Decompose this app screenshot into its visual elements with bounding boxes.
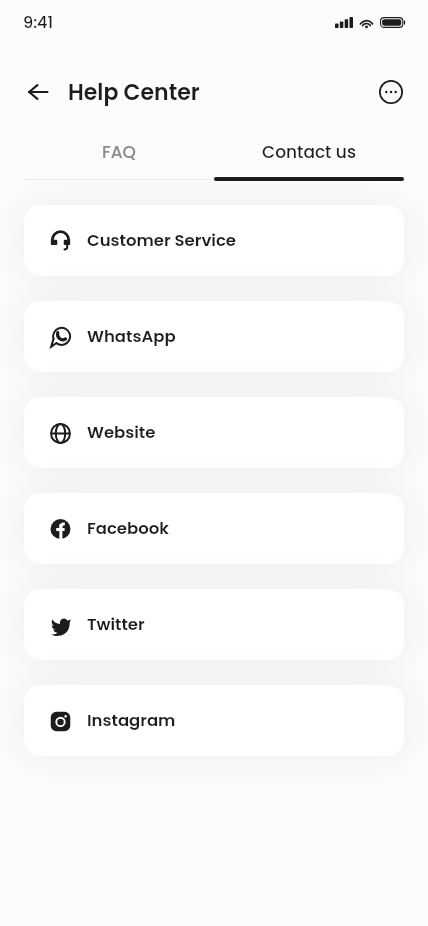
staticText: Contact us [262, 140, 356, 164]
button[interactable]: Back [16, 70, 60, 114]
button[interactable]: WhatsApp [24, 301, 404, 372]
staticText: Instagram [87, 709, 176, 732]
button[interactable]: Website [24, 397, 404, 468]
staticText: Help Center [68, 77, 200, 108]
button[interactable]: Instagram [24, 685, 404, 756]
button[interactable]: FAQ [24, 128, 214, 181]
staticText: Twitter [87, 613, 145, 636]
staticText: 9:41 [23, 11, 54, 33]
staticText: Customer Service [87, 229, 237, 252]
button[interactable]: Contact us [214, 128, 404, 181]
staticText: Website [87, 421, 156, 444]
button[interactable]: Customer Service [24, 205, 404, 276]
staticText: FAQ [102, 140, 136, 164]
button[interactable]: Twitter [24, 589, 404, 660]
button[interactable]: More options [371, 72, 411, 112]
staticText: Facebook [87, 517, 169, 540]
staticText: WhatsApp [87, 325, 176, 348]
button[interactable]: Facebook [24, 493, 404, 564]
